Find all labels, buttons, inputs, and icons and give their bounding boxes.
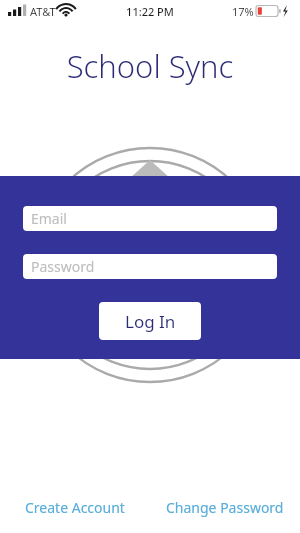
button[interactable]: Change Password (150, 493, 300, 521)
staticText: Password (31, 257, 95, 276)
staticText: Create Account (25, 498, 125, 517)
staticText: Email (31, 209, 67, 228)
staticText: 17% (232, 4, 254, 19)
staticText: Log In (125, 310, 176, 333)
staticText: School Sync (0, 45, 300, 87)
button[interactable]: Password (23, 254, 277, 279)
staticText: 11:22 PM (0, 4, 300, 19)
button[interactable]: Email (23, 206, 277, 231)
staticText: AT&T (30, 4, 56, 19)
staticText: Change Password (166, 498, 284, 517)
button[interactable]: Log In (99, 302, 201, 340)
button[interactable]: Create Account (0, 493, 150, 521)
